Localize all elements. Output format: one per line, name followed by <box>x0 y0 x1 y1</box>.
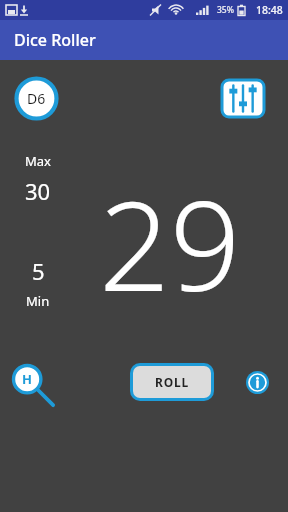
button[interactable]: Die type D6 <box>14 76 59 121</box>
button[interactable]: Dice Roller <box>0 20 288 60</box>
staticText: D6 <box>27 89 46 108</box>
staticText: ROLL <box>155 374 189 390</box>
staticText: Min <box>26 292 50 310</box>
staticText: H <box>22 370 32 388</box>
staticText: 35% <box>217 4 234 16</box>
button[interactable]: Info <box>246 371 269 394</box>
button[interactable]: 30 <box>25 176 51 206</box>
staticText: 29 <box>99 158 241 316</box>
button[interactable]: ROLL <box>133 366 211 398</box>
staticText: 30 <box>25 176 51 206</box>
button[interactable]: 5 <box>32 256 45 286</box>
staticText: Dice Roller <box>14 29 96 51</box>
button[interactable]: History <box>8 360 56 408</box>
staticText: 5 <box>32 256 45 286</box>
staticText: Max <box>25 152 51 170</box>
button[interactable]: Settings <box>220 78 266 119</box>
staticText: 18:48 <box>256 3 283 17</box>
